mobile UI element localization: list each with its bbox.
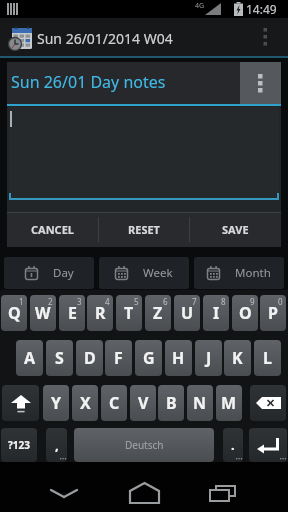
staticText: 6 [163,296,168,307]
staticText: 5 [134,296,139,307]
staticText: D [84,347,96,369]
staticText: Y [51,392,62,414]
button[interactable]: U [174,295,200,331]
button[interactable] [198,482,246,504]
button[interactable]: X [72,385,98,421]
staticText: Deutsch [125,438,164,452]
staticText: V [138,392,149,414]
staticText: H [172,347,185,369]
staticText: Q [8,302,21,324]
staticText: ?123 [8,438,30,452]
staticText: 1 [19,296,24,307]
staticText: Sun 26/01/2014 W04 [37,29,173,48]
button[interactable]: RESET [98,212,189,247]
button[interactable]: Day [4,257,94,289]
staticText: M [221,392,237,414]
staticText: N [193,392,207,414]
staticText: W [35,302,51,324]
staticText: A [24,347,36,369]
button[interactable]: M [216,385,242,421]
button[interactable]: , [46,428,67,462]
staticText: L [263,347,272,369]
staticText: RESET [128,222,160,237]
staticText: P [268,302,278,324]
button[interactable]: Q [1,295,27,331]
button[interactable]: ?123 [1,428,37,462]
staticText: S [55,347,64,369]
staticText: 4 [105,296,110,307]
button[interactable]: H [165,340,192,376]
button[interactable]: V [130,385,156,421]
button[interactable]: CANCEL [7,212,98,247]
button[interactable]: O [232,295,258,331]
button[interactable] [250,385,286,421]
staticText: F [114,347,123,369]
staticText: 0 [278,296,283,307]
staticText: 9 [250,296,255,307]
staticText: Week [143,265,173,281]
button[interactable]: K [224,340,251,376]
staticText: 4G [195,1,205,11]
staticText: 8 [221,296,226,307]
button[interactable]: E [59,295,85,331]
staticText: X [80,392,91,414]
button[interactable]: Z [145,295,171,331]
button[interactable]: J [195,340,222,376]
button[interactable]: Deutsch [74,428,214,462]
button[interactable]: I [203,295,229,331]
staticText: CANCEL [31,222,74,237]
button[interactable]: N [187,385,213,421]
button[interactable]: W [30,295,56,331]
staticText: SAVE [222,222,249,237]
staticText: 3 [77,296,82,307]
staticText: K [232,347,243,369]
staticText: R [95,302,106,324]
button[interactable]: . [223,428,243,462]
staticText: C [109,392,120,414]
button[interactable]: Week [99,257,189,289]
button[interactable] [240,62,281,104]
staticText: E [68,302,77,324]
staticText: U [181,302,194,324]
staticText: I [213,302,220,324]
button[interactable] [120,480,168,506]
staticText: 14:49 [246,1,277,17]
button[interactable]: C [101,385,127,421]
staticText: . [231,436,235,454]
staticText: , [55,436,59,454]
button[interactable] [263,28,268,48]
staticText: Day [53,265,74,281]
button[interactable]: Month [194,257,284,289]
button[interactable]: B [158,385,184,421]
button[interactable]: G [135,340,162,376]
staticText: G [143,347,155,369]
button[interactable]: R [87,295,113,331]
button[interactable]: Y [43,385,69,421]
staticText: Sun 26/01 Day notes [11,71,166,93]
staticText: 2 [48,296,53,307]
button[interactable]: A [16,340,43,376]
button[interactable] [249,428,287,462]
button[interactable]: SAVE [189,212,281,247]
button[interactable]: D [76,340,103,376]
button[interactable]: F [105,340,132,376]
button[interactable]: S [46,340,73,376]
button[interactable]: L [254,340,281,376]
button[interactable] [40,482,88,506]
staticText: Z [153,302,163,324]
button[interactable]: T [116,295,142,331]
staticText: Month [235,265,271,281]
staticText: B [166,392,177,414]
button[interactable]: P [260,295,286,331]
button[interactable] [2,385,39,421]
staticText: T [124,302,134,324]
staticText: O [239,302,252,324]
staticText: 7 [192,296,197,307]
staticText: J [206,347,212,369]
